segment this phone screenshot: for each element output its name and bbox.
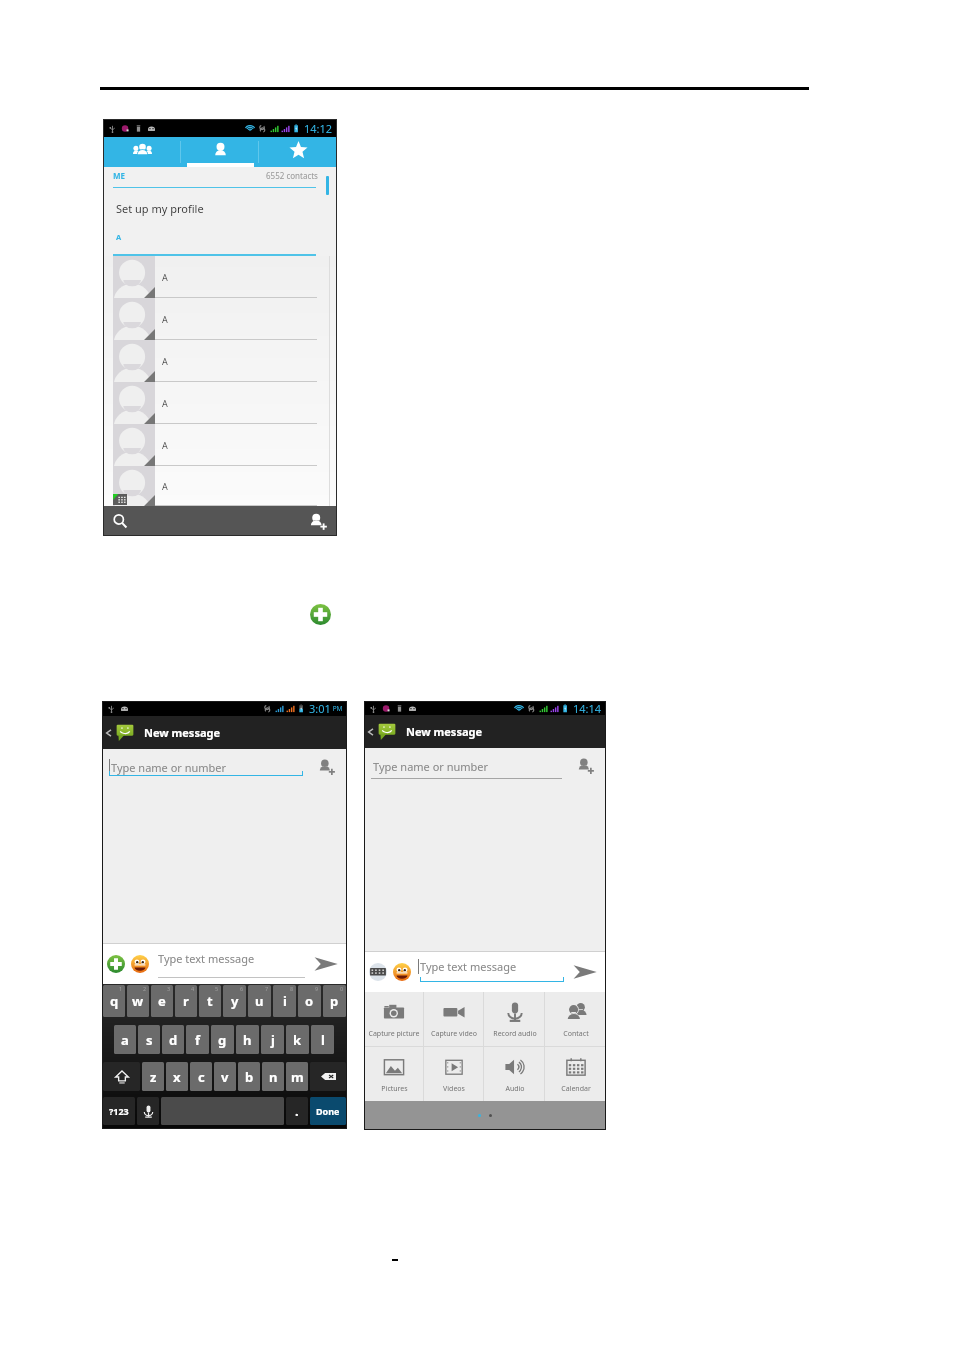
button[interactable]: Capture video bbox=[424, 992, 484, 1046]
staticText: p bbox=[330, 992, 339, 1010]
button[interactable]: Add recipient bbox=[577, 757, 595, 775]
staticText: Capture picture bbox=[368, 1029, 420, 1039]
button[interactable]: Pictures bbox=[364, 1047, 424, 1101]
button[interactable]: A bbox=[103, 382, 337, 424]
staticText: Record audio bbox=[493, 1029, 537, 1039]
staticText: c bbox=[198, 1068, 205, 1086]
staticText: r bbox=[183, 992, 189, 1010]
button[interactable]: Calendar bbox=[545, 1047, 606, 1101]
button[interactable]: n bbox=[262, 1062, 284, 1091]
button[interactable]: A bbox=[103, 424, 337, 466]
button[interactable]: Back bbox=[104, 728, 114, 738]
button[interactable]: j bbox=[261, 1025, 284, 1054]
button[interactable]: Capture picture bbox=[364, 992, 424, 1046]
button[interactable]: Search bbox=[112, 513, 129, 530]
button[interactable]: Emoji bbox=[393, 963, 411, 981]
button[interactable]: c bbox=[190, 1062, 212, 1091]
button[interactable]: r bbox=[175, 985, 197, 1017]
button[interactable]: w bbox=[127, 985, 149, 1017]
staticText: w bbox=[132, 992, 144, 1010]
button[interactable]: l bbox=[311, 1025, 334, 1054]
staticText: Type text message bbox=[420, 959, 517, 974]
button[interactable]: v bbox=[214, 1062, 236, 1091]
staticText: h bbox=[243, 1031, 252, 1049]
staticText: g bbox=[218, 1031, 227, 1049]
button[interactable]: h bbox=[236, 1025, 259, 1054]
staticText: 7 bbox=[265, 985, 269, 992]
staticText: q bbox=[110, 992, 119, 1010]
staticText: y bbox=[231, 992, 239, 1010]
button[interactable]: . bbox=[286, 1097, 308, 1125]
staticText: v bbox=[221, 1068, 229, 1086]
staticText: Done bbox=[316, 1105, 340, 1117]
button[interactable]: p bbox=[323, 985, 346, 1017]
button[interactable]: Videos bbox=[424, 1047, 484, 1101]
button[interactable]: b bbox=[238, 1062, 260, 1091]
button[interactable]: Done bbox=[310, 1097, 346, 1125]
staticText: l bbox=[321, 1031, 325, 1049]
button[interactable]: A bbox=[103, 466, 337, 506]
button[interactable]: i bbox=[273, 985, 296, 1017]
staticText: o bbox=[305, 992, 314, 1010]
button[interactable]: Back bbox=[366, 727, 376, 737]
staticText: . bbox=[295, 1102, 299, 1120]
button[interactable] bbox=[103, 1062, 140, 1091]
button[interactable]: ME bbox=[103, 167, 337, 192]
button[interactable]: z bbox=[142, 1062, 164, 1091]
button[interactable]: Record audio bbox=[484, 992, 545, 1046]
button[interactable]: a bbox=[114, 1025, 136, 1054]
button[interactable]: Contact bbox=[545, 992, 606, 1046]
button[interactable]: k bbox=[286, 1025, 309, 1054]
staticText: ?123 bbox=[109, 1105, 129, 1117]
button[interactable]: g bbox=[211, 1025, 234, 1054]
staticText: A bbox=[162, 313, 168, 325]
button[interactable]: d bbox=[162, 1025, 184, 1054]
button[interactable]: e bbox=[151, 985, 173, 1017]
button[interactable]: Emoji bbox=[131, 955, 149, 973]
button[interactable] bbox=[181, 137, 259, 167]
staticText: 2 bbox=[143, 985, 147, 992]
staticText: j bbox=[271, 1031, 275, 1049]
button[interactable]: s bbox=[138, 1025, 160, 1054]
staticText: f bbox=[195, 1031, 201, 1049]
button[interactable]: f bbox=[186, 1025, 209, 1054]
button[interactable]: u bbox=[248, 985, 271, 1017]
staticText: t bbox=[207, 992, 213, 1010]
button[interactable]: A bbox=[103, 340, 337, 382]
staticText: i bbox=[283, 992, 287, 1010]
button[interactable]: ?123 bbox=[103, 1097, 135, 1125]
button[interactable]: Send bbox=[313, 951, 339, 977]
staticText: z bbox=[150, 1068, 157, 1086]
button[interactable]: y bbox=[223, 985, 246, 1017]
button[interactable]: Attach bbox=[369, 963, 387, 981]
button[interactable]: Add recipient bbox=[318, 758, 336, 776]
button[interactable] bbox=[310, 1062, 346, 1091]
button[interactable]: A bbox=[103, 298, 337, 340]
staticText: Audio bbox=[505, 1084, 525, 1094]
button[interactable]: x bbox=[166, 1062, 188, 1091]
staticText: 5 bbox=[215, 985, 219, 992]
staticText: Videos bbox=[443, 1084, 465, 1094]
staticText: Type text message bbox=[158, 951, 255, 966]
button[interactable]: q bbox=[103, 985, 125, 1017]
staticText: 6 bbox=[240, 985, 244, 992]
button[interactable] bbox=[137, 1097, 159, 1125]
staticText: A bbox=[162, 439, 168, 451]
staticText: 3:01 bbox=[309, 701, 331, 716]
button[interactable] bbox=[103, 137, 181, 167]
staticText: Capture video bbox=[431, 1029, 477, 1039]
button[interactable]: m bbox=[286, 1062, 308, 1091]
staticText: New message bbox=[406, 724, 483, 739]
staticText: b bbox=[245, 1068, 254, 1086]
staticText: u bbox=[255, 992, 264, 1010]
button[interactable]: A bbox=[103, 256, 337, 298]
button[interactable]: Send bbox=[572, 959, 598, 985]
button[interactable]: Audio bbox=[484, 1047, 545, 1101]
staticText: k bbox=[293, 1031, 302, 1049]
button[interactable]: t bbox=[199, 985, 221, 1017]
button[interactable]: o bbox=[298, 985, 321, 1017]
button[interactable]: Add contact bbox=[309, 512, 328, 531]
button[interactable] bbox=[259, 137, 337, 167]
button[interactable]: Attach bbox=[107, 955, 125, 973]
